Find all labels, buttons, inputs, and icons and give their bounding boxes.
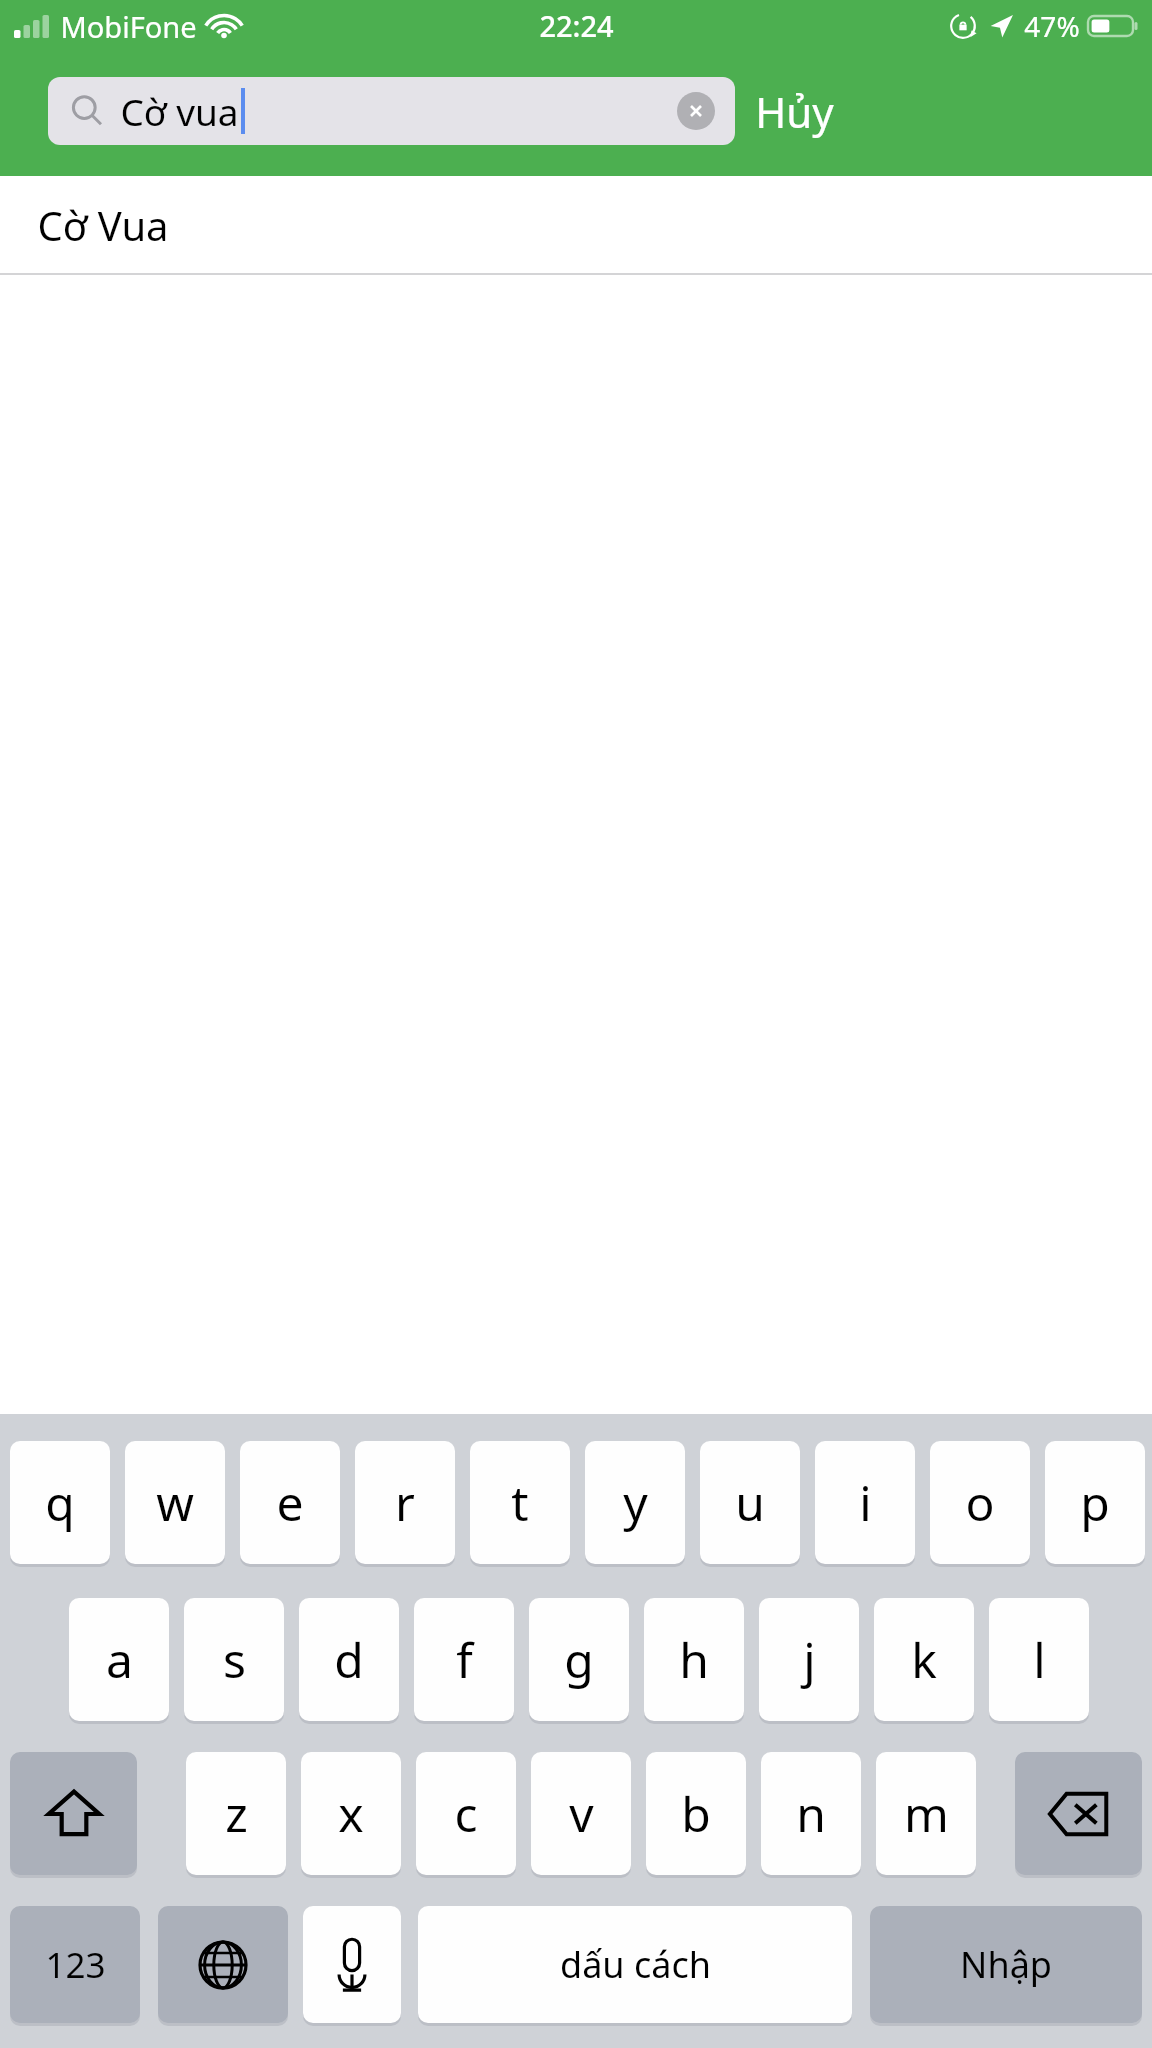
staticText: 22:24 bbox=[539, 6, 614, 45]
button[interactable]: j bbox=[759, 1598, 859, 1721]
button[interactable]: Dictation bbox=[303, 1906, 401, 2023]
staticText: i bbox=[859, 1470, 872, 1535]
staticText: y bbox=[623, 1470, 648, 1535]
button[interactable]: o bbox=[930, 1441, 1030, 1564]
button[interactable]: h bbox=[644, 1598, 744, 1721]
button[interactable]: b bbox=[646, 1752, 746, 1875]
staticText: m bbox=[904, 1781, 949, 1846]
staticText: b bbox=[681, 1781, 711, 1846]
staticText: Hủy bbox=[755, 83, 834, 140]
button[interactable]: Cờ Vua bbox=[0, 176, 1152, 273]
button[interactable]: dấu cách bbox=[418, 1906, 852, 2023]
button[interactable]: Hủy bbox=[755, 70, 935, 152]
staticText: f bbox=[456, 1627, 473, 1692]
button[interactable]: c bbox=[416, 1752, 516, 1875]
staticText: k bbox=[911, 1627, 937, 1692]
button[interactable]: w bbox=[125, 1441, 225, 1564]
button[interactable]: q bbox=[10, 1441, 110, 1564]
button[interactable]: x bbox=[301, 1752, 401, 1875]
button[interactable]: e bbox=[240, 1441, 340, 1564]
staticText: t bbox=[511, 1470, 529, 1535]
staticText: r bbox=[395, 1470, 415, 1535]
staticText: Cờ Vua bbox=[37, 198, 169, 252]
staticText: c bbox=[454, 1781, 478, 1846]
staticText: 47% bbox=[1024, 7, 1080, 45]
staticText: d bbox=[334, 1627, 364, 1692]
staticText: e bbox=[276, 1470, 304, 1535]
staticText: MobiFone bbox=[60, 7, 197, 46]
staticText: z bbox=[225, 1781, 248, 1846]
button[interactable]: 123 bbox=[10, 1906, 140, 2023]
staticText: g bbox=[564, 1627, 594, 1692]
staticText: Nhập bbox=[960, 1940, 1052, 1989]
staticText: w bbox=[156, 1470, 194, 1535]
staticText: l bbox=[1033, 1627, 1046, 1692]
staticText: x bbox=[338, 1781, 364, 1846]
button[interactable]: Shift bbox=[10, 1752, 137, 1875]
staticText: o bbox=[965, 1470, 995, 1535]
button[interactable]: f bbox=[414, 1598, 514, 1721]
staticText: Cờ vua bbox=[120, 86, 239, 136]
button[interactable]: n bbox=[761, 1752, 861, 1875]
staticText: h bbox=[679, 1627, 709, 1692]
staticText: u bbox=[735, 1470, 765, 1535]
staticText: s bbox=[223, 1627, 246, 1692]
button[interactable]: r bbox=[355, 1441, 455, 1564]
button[interactable]: Backspace bbox=[1015, 1752, 1142, 1875]
button[interactable]: v bbox=[531, 1752, 631, 1875]
staticText: dấu cách bbox=[560, 1940, 711, 1989]
button[interactable]: y bbox=[585, 1441, 685, 1564]
button[interactable]: s bbox=[184, 1598, 284, 1721]
staticText: n bbox=[796, 1781, 826, 1846]
button[interactable]: g bbox=[529, 1598, 629, 1721]
button[interactable]: t bbox=[470, 1441, 570, 1564]
button[interactable]: a bbox=[69, 1598, 169, 1721]
staticText: p bbox=[1080, 1470, 1110, 1535]
button[interactable]: d bbox=[299, 1598, 399, 1721]
button[interactable]: u bbox=[700, 1441, 800, 1564]
staticText: 123 bbox=[45, 1941, 106, 1989]
button[interactable]: Nhập bbox=[870, 1906, 1142, 2023]
button[interactable]: Cờ vua bbox=[48, 77, 735, 145]
button[interactable]: i bbox=[815, 1441, 915, 1564]
button[interactable]: Change keyboard language bbox=[158, 1906, 288, 2023]
button[interactable]: p bbox=[1045, 1441, 1145, 1564]
button[interactable]: Clear text bbox=[677, 92, 715, 130]
staticText: q bbox=[45, 1470, 75, 1535]
staticText: j bbox=[803, 1627, 816, 1692]
button[interactable]: k bbox=[874, 1598, 974, 1721]
button[interactable]: l bbox=[989, 1598, 1089, 1721]
staticText: a bbox=[106, 1627, 133, 1692]
staticText: v bbox=[569, 1781, 594, 1846]
button[interactable]: m bbox=[876, 1752, 976, 1875]
button[interactable]: z bbox=[186, 1752, 286, 1875]
